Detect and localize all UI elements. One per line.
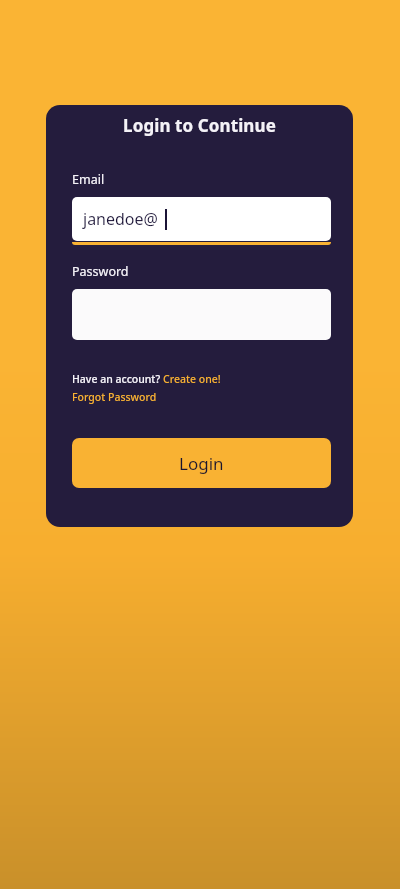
button[interactable]: Create one! xyxy=(163,372,221,386)
staticText: Email xyxy=(72,171,105,188)
staticText: Login xyxy=(179,452,224,475)
staticText: Have an account? xyxy=(72,372,163,386)
button[interactable]: janedoe@ xyxy=(72,197,331,245)
staticText: Forgot Password xyxy=(72,390,157,404)
staticText: Create one! xyxy=(163,372,221,386)
button[interactable]: Forgot Password xyxy=(72,390,157,404)
staticText: Password xyxy=(72,263,129,280)
button[interactable] xyxy=(72,289,331,340)
staticText: Login to Continue xyxy=(46,114,353,137)
button[interactable]: Login xyxy=(72,438,331,488)
staticText: janedoe@ xyxy=(83,208,158,230)
